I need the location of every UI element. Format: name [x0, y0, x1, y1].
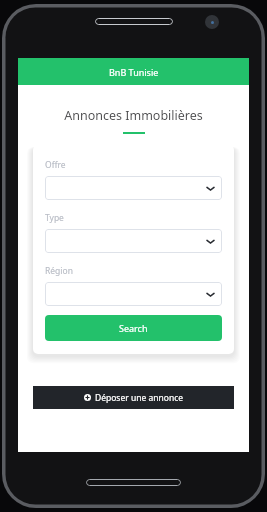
button[interactable]: Select option — [45, 229, 222, 253]
button[interactable]: Select option — [45, 176, 222, 200]
staticText: Offre — [45, 159, 66, 171]
staticText: Type — [45, 212, 64, 224]
button[interactable]: BnB Tunisie — [18, 58, 249, 85]
staticText: Search — [119, 322, 148, 334]
staticText: BnB Tunisie — [109, 66, 159, 78]
staticText: Déposer une annonce — [95, 392, 184, 404]
staticText: Annonces Immobilières — [18, 107, 249, 124]
button[interactable]: Search — [45, 315, 222, 341]
staticText: Région — [45, 265, 73, 277]
button[interactable]: Déposer une annonce — [33, 386, 234, 409]
button[interactable]: Select option — [45, 282, 222, 306]
